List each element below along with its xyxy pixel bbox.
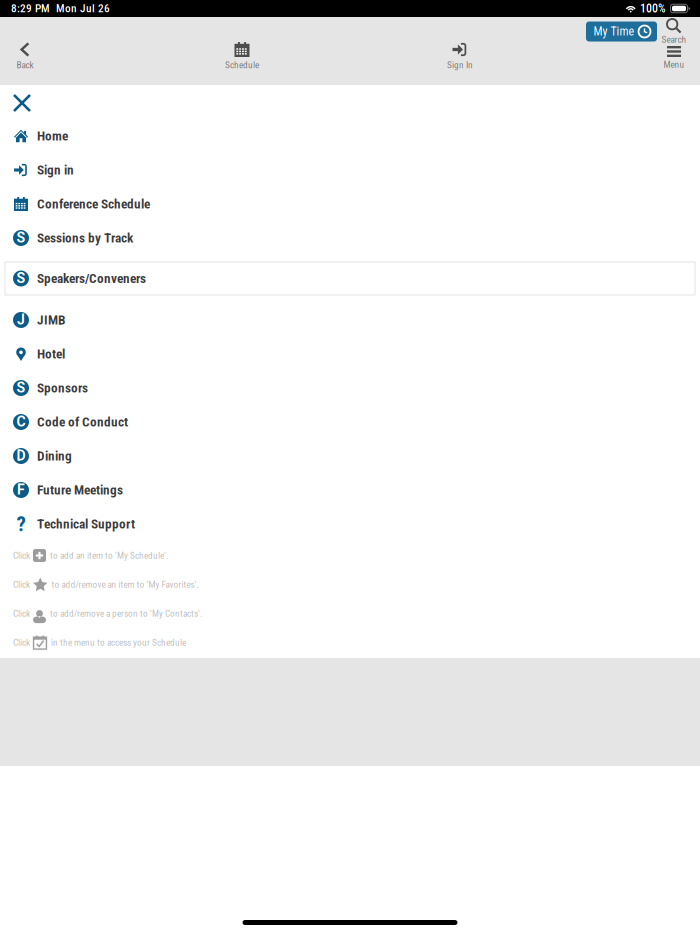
button[interactable]: D bbox=[0, 439, 700, 473]
button[interactable]: Search bbox=[654, 19, 694, 43]
button[interactable]: J bbox=[0, 303, 700, 337]
staticText: Click bbox=[13, 608, 30, 619]
button[interactable]: ? bbox=[0, 507, 700, 541]
staticText: S bbox=[16, 229, 25, 246]
staticText: in the menu to access your Schedule bbox=[51, 637, 186, 648]
staticText: Back bbox=[16, 59, 33, 70]
staticText: Search bbox=[661, 34, 686, 45]
button[interactable]: Menu bbox=[654, 46, 694, 68]
button[interactable]: Sign In bbox=[432, 41, 488, 73]
staticText: Conference Schedule bbox=[37, 196, 150, 212]
staticText: to add an item to 'My Schedule'. bbox=[50, 550, 168, 561]
staticText: Mon Jul 26 bbox=[56, 2, 110, 15]
button[interactable]: Schedule bbox=[214, 41, 270, 73]
staticText: Sessions by Track bbox=[37, 230, 133, 246]
staticText: J bbox=[17, 311, 25, 328]
staticText: Sign In bbox=[447, 59, 473, 70]
staticText: C bbox=[16, 413, 25, 430]
staticText: JIMB bbox=[37, 312, 65, 328]
staticText: F bbox=[17, 481, 25, 498]
button[interactable]: Hotel bbox=[0, 337, 700, 371]
button[interactable]: S bbox=[0, 255, 700, 303]
staticText: S bbox=[16, 270, 25, 286]
staticText: Dining bbox=[37, 448, 72, 464]
staticText: Home bbox=[37, 128, 68, 144]
button[interactable]: S bbox=[0, 221, 700, 255]
staticText: ? bbox=[16, 512, 25, 536]
staticText: to add/remove an item to 'My Favorites'. bbox=[51, 579, 198, 590]
staticText: Hotel bbox=[37, 346, 65, 362]
staticText: Click bbox=[13, 579, 30, 590]
staticText: My Time bbox=[593, 24, 634, 39]
staticText: Speakers/Conveners bbox=[37, 271, 146, 286]
staticText: Code of Conduct bbox=[37, 414, 128, 430]
staticText: Click bbox=[13, 637, 30, 648]
staticText: 100% bbox=[640, 1, 666, 16]
button[interactable]: Back bbox=[0, 41, 53, 73]
staticText: Technical Support bbox=[37, 516, 135, 532]
staticText: D bbox=[16, 447, 25, 464]
staticText: Menu bbox=[663, 59, 684, 70]
button[interactable]: S bbox=[0, 371, 700, 405]
staticText: Sign in bbox=[37, 162, 74, 178]
button[interactable]: Home bbox=[0, 119, 700, 153]
button[interactable]: F bbox=[0, 473, 700, 507]
staticText: S bbox=[16, 379, 25, 396]
staticText: Click bbox=[13, 550, 30, 561]
button[interactable]: Conference Schedule bbox=[0, 187, 700, 221]
button[interactable]: Close menu bbox=[0, 85, 700, 119]
staticText: Future Meetings bbox=[37, 482, 123, 498]
button[interactable]: Sign in bbox=[0, 153, 700, 187]
button[interactable]: C bbox=[0, 405, 700, 439]
staticText: 8:29 PM bbox=[11, 2, 50, 15]
button[interactable]: My Time bbox=[586, 21, 657, 41]
staticText: Sponsors bbox=[37, 380, 88, 396]
staticText: to add/remove a person to 'My Contacts'. bbox=[50, 608, 202, 619]
staticText: Schedule bbox=[225, 59, 259, 70]
